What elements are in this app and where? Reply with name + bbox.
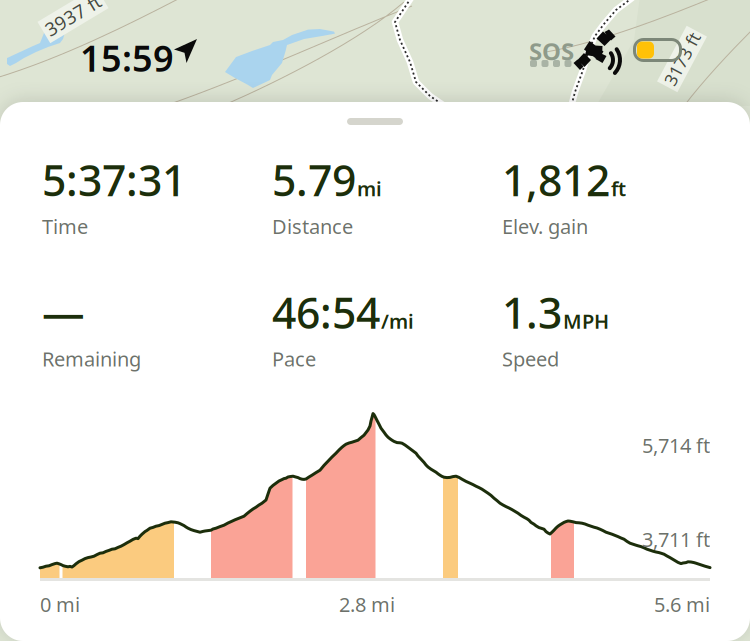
- staticText: 3,711 ft: [642, 526, 710, 553]
- staticText: mi: [357, 175, 382, 202]
- staticText: Elev. gain: [502, 213, 588, 240]
- staticText: 5.79: [272, 151, 356, 208]
- button[interactable]: Resize sheet: [317, 109, 433, 134]
- staticText: Distance: [272, 213, 353, 240]
- staticText: 0 mi: [40, 591, 80, 618]
- staticText: —: [42, 284, 85, 341]
- staticText: ft: [611, 175, 626, 202]
- staticText: SOS: [529, 35, 574, 67]
- staticText: Remaining: [42, 346, 141, 372]
- staticText: Speed: [502, 346, 559, 372]
- staticText: 1.3: [502, 284, 562, 341]
- staticText: MPH: [563, 308, 609, 334]
- staticText: 3173 ft: [653, 47, 710, 70]
- staticText: 5,714 ft: [642, 432, 710, 459]
- staticText: 5.6 mi: [654, 591, 710, 618]
- staticText: 46:54: [272, 284, 380, 341]
- staticText: 3937 ft: [42, 3, 104, 27]
- staticText: Pace: [272, 346, 316, 372]
- staticText: Time: [42, 213, 88, 240]
- staticText: 2.8 mi: [339, 591, 395, 618]
- staticText: /mi: [381, 308, 414, 334]
- staticText: 15:59: [80, 34, 174, 82]
- staticText: 1,812: [502, 151, 610, 208]
- staticText: 5:37:31: [42, 151, 186, 208]
